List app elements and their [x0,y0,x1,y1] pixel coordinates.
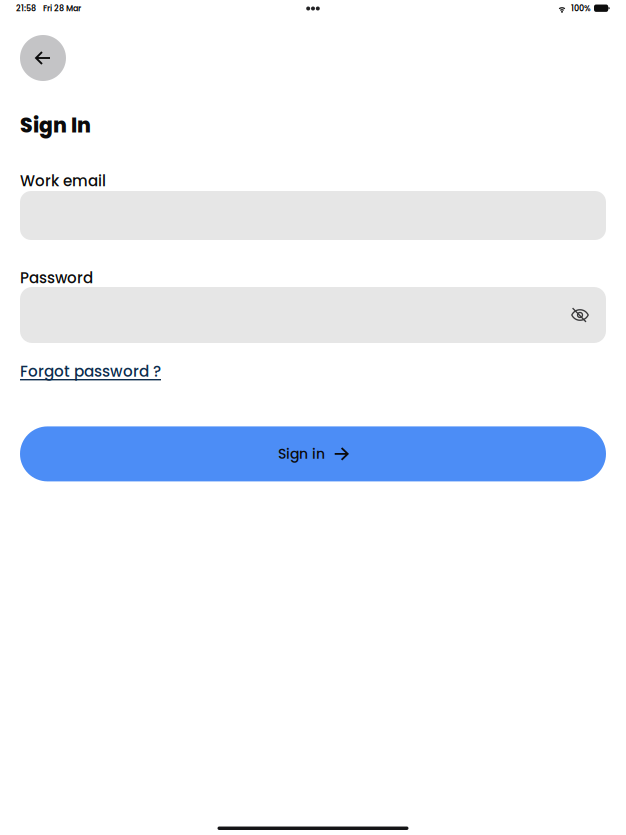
staticText: 21:58 [16,3,36,14]
staticText: Fri 28 Mar [43,3,81,14]
staticText: 100% [571,3,591,14]
staticText: Password [20,267,93,289]
button[interactable]: Back [20,35,66,81]
staticText: Sign in [278,444,325,464]
button[interactable]: Sign in [20,426,606,481]
button[interactable]: Show password [571,288,606,341]
button[interactable]: Forgot password ? [20,365,161,380]
staticText: Forgot password ? [20,361,161,382]
staticText: Work email [20,170,106,192]
staticText: Sign In [20,111,91,140]
